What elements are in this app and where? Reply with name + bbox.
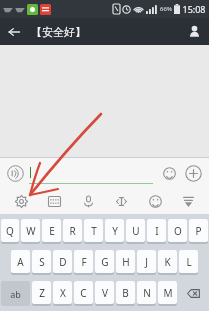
staticText: K <box>164 255 171 269</box>
staticText: P <box>195 224 202 238</box>
button[interactable]: V <box>95 281 114 304</box>
button[interactable]: Emoticons <box>142 188 168 214</box>
staticText: 15:08 <box>182 3 206 15</box>
staticText: D <box>59 255 67 269</box>
staticText: E <box>49 224 55 238</box>
button[interactable]: Backspace <box>179 281 208 306</box>
button[interactable]: G <box>95 250 114 273</box>
button[interactable]: I <box>147 219 166 242</box>
staticText: T <box>91 224 97 238</box>
staticText: 66% <box>160 5 172 13</box>
button[interactable]: L <box>179 250 198 273</box>
staticText: Y <box>112 224 118 238</box>
staticText: ab <box>10 288 21 300</box>
button[interactable]: X <box>53 281 72 304</box>
staticText: H <box>122 255 130 269</box>
staticText: O <box>174 224 182 238</box>
button[interactable]: Switch to voice <box>5 163 25 183</box>
button[interactable]: P <box>189 219 208 242</box>
button[interactable]: F <box>74 250 93 273</box>
staticText: F <box>81 255 87 269</box>
button[interactable]: D <box>53 250 72 273</box>
button[interactable]: B <box>116 281 135 304</box>
button[interactable]: Keyboard layout <box>41 188 67 214</box>
button[interactable]: Hide keyboard <box>175 188 201 214</box>
staticText: N <box>143 286 151 300</box>
staticText: X <box>60 286 66 300</box>
button[interactable]: W <box>21 219 40 242</box>
staticText: B <box>122 286 129 300</box>
button[interactable]: T <box>84 219 103 242</box>
button[interactable] <box>29 162 153 184</box>
button[interactable]: 【安全好】 <box>31 25 86 39</box>
button[interactable]: Q <box>1 219 19 242</box>
staticText: J <box>145 255 148 269</box>
button[interactable]: Emoji <box>159 163 179 183</box>
button[interactable]: Z <box>32 281 51 304</box>
button[interactable]: More options <box>182 162 204 184</box>
staticText: S <box>39 255 45 269</box>
button[interactable]: Voice input <box>75 188 101 214</box>
staticText: Z <box>39 286 45 300</box>
button[interactable]: Chat info <box>179 18 209 45</box>
staticText: Q <box>6 224 14 238</box>
button[interactable]: H <box>116 250 135 273</box>
staticText: W <box>26 224 36 238</box>
button[interactable]: ab <box>1 281 30 306</box>
staticText: R <box>69 224 76 238</box>
staticText: U <box>132 224 140 238</box>
button[interactable]: S <box>32 250 51 273</box>
staticText: V <box>102 286 108 300</box>
button[interactable]: O <box>168 219 187 242</box>
button[interactable]: U <box>126 219 145 242</box>
button[interactable]: E <box>42 219 61 242</box>
staticText: G <box>101 255 109 269</box>
staticText: C <box>80 286 87 300</box>
staticText: L <box>186 255 192 269</box>
button[interactable]: Settings <box>8 188 34 214</box>
staticText: M <box>163 286 173 300</box>
button[interactable]: K <box>158 250 177 273</box>
button[interactable]: Back <box>0 18 27 45</box>
button[interactable]: A <box>11 250 30 273</box>
button[interactable]: M <box>158 281 177 304</box>
button[interactable]: Text selection <box>108 188 134 214</box>
staticText: 【安全好】 <box>31 25 86 39</box>
staticText: A <box>17 255 24 269</box>
button[interactable]: R <box>63 219 82 242</box>
button[interactable]: N <box>137 281 156 304</box>
button[interactable]: C <box>74 281 93 304</box>
staticText: I <box>155 224 159 238</box>
button[interactable]: Y <box>105 219 124 242</box>
button[interactable]: J <box>137 250 156 273</box>
